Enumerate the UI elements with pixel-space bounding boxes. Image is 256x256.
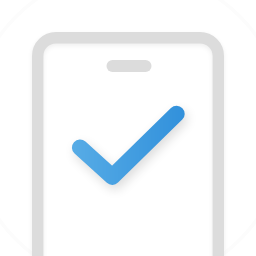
button[interactable]: Task complete (0, 0, 256, 256)
